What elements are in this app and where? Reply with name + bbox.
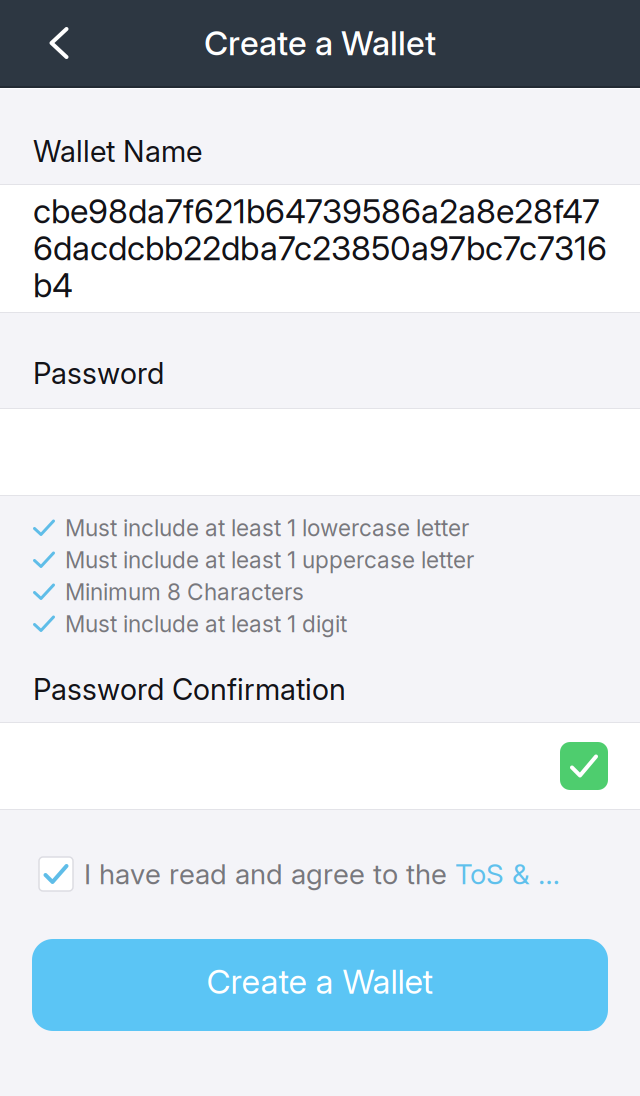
staticText: Wallet Name	[33, 133, 202, 169]
staticText: Must include at least 1 uppercase letter	[65, 546, 474, 574]
staticText: Must include at least 1 digit	[65, 610, 347, 638]
staticText: Password	[33, 355, 164, 391]
staticText: Must include at least 1 lowercase letter	[65, 514, 469, 542]
staticText: cbe98da7f621b64739586a2a8e28f47	[33, 191, 600, 231]
staticText: I have read and agree to the	[84, 857, 455, 891]
staticText: Create a Wallet	[204, 23, 436, 63]
staticText: Create a Wallet	[206, 961, 433, 1002]
button[interactable]: Password matches	[560, 742, 608, 790]
staticText: ToS & …	[455, 857, 560, 891]
button[interactable]: Create a Wallet	[32, 939, 608, 1031]
staticText: 6dacdcbb22dba7c23850a97bc7c7316	[33, 228, 607, 268]
button[interactable]: I have read and agree to the	[0, 857, 640, 891]
staticText: Minimum 8 Characters	[65, 578, 304, 606]
staticText: Password Confirmation	[33, 671, 346, 707]
staticText: b4	[33, 265, 73, 305]
button[interactable]: Back	[15, 0, 103, 87]
